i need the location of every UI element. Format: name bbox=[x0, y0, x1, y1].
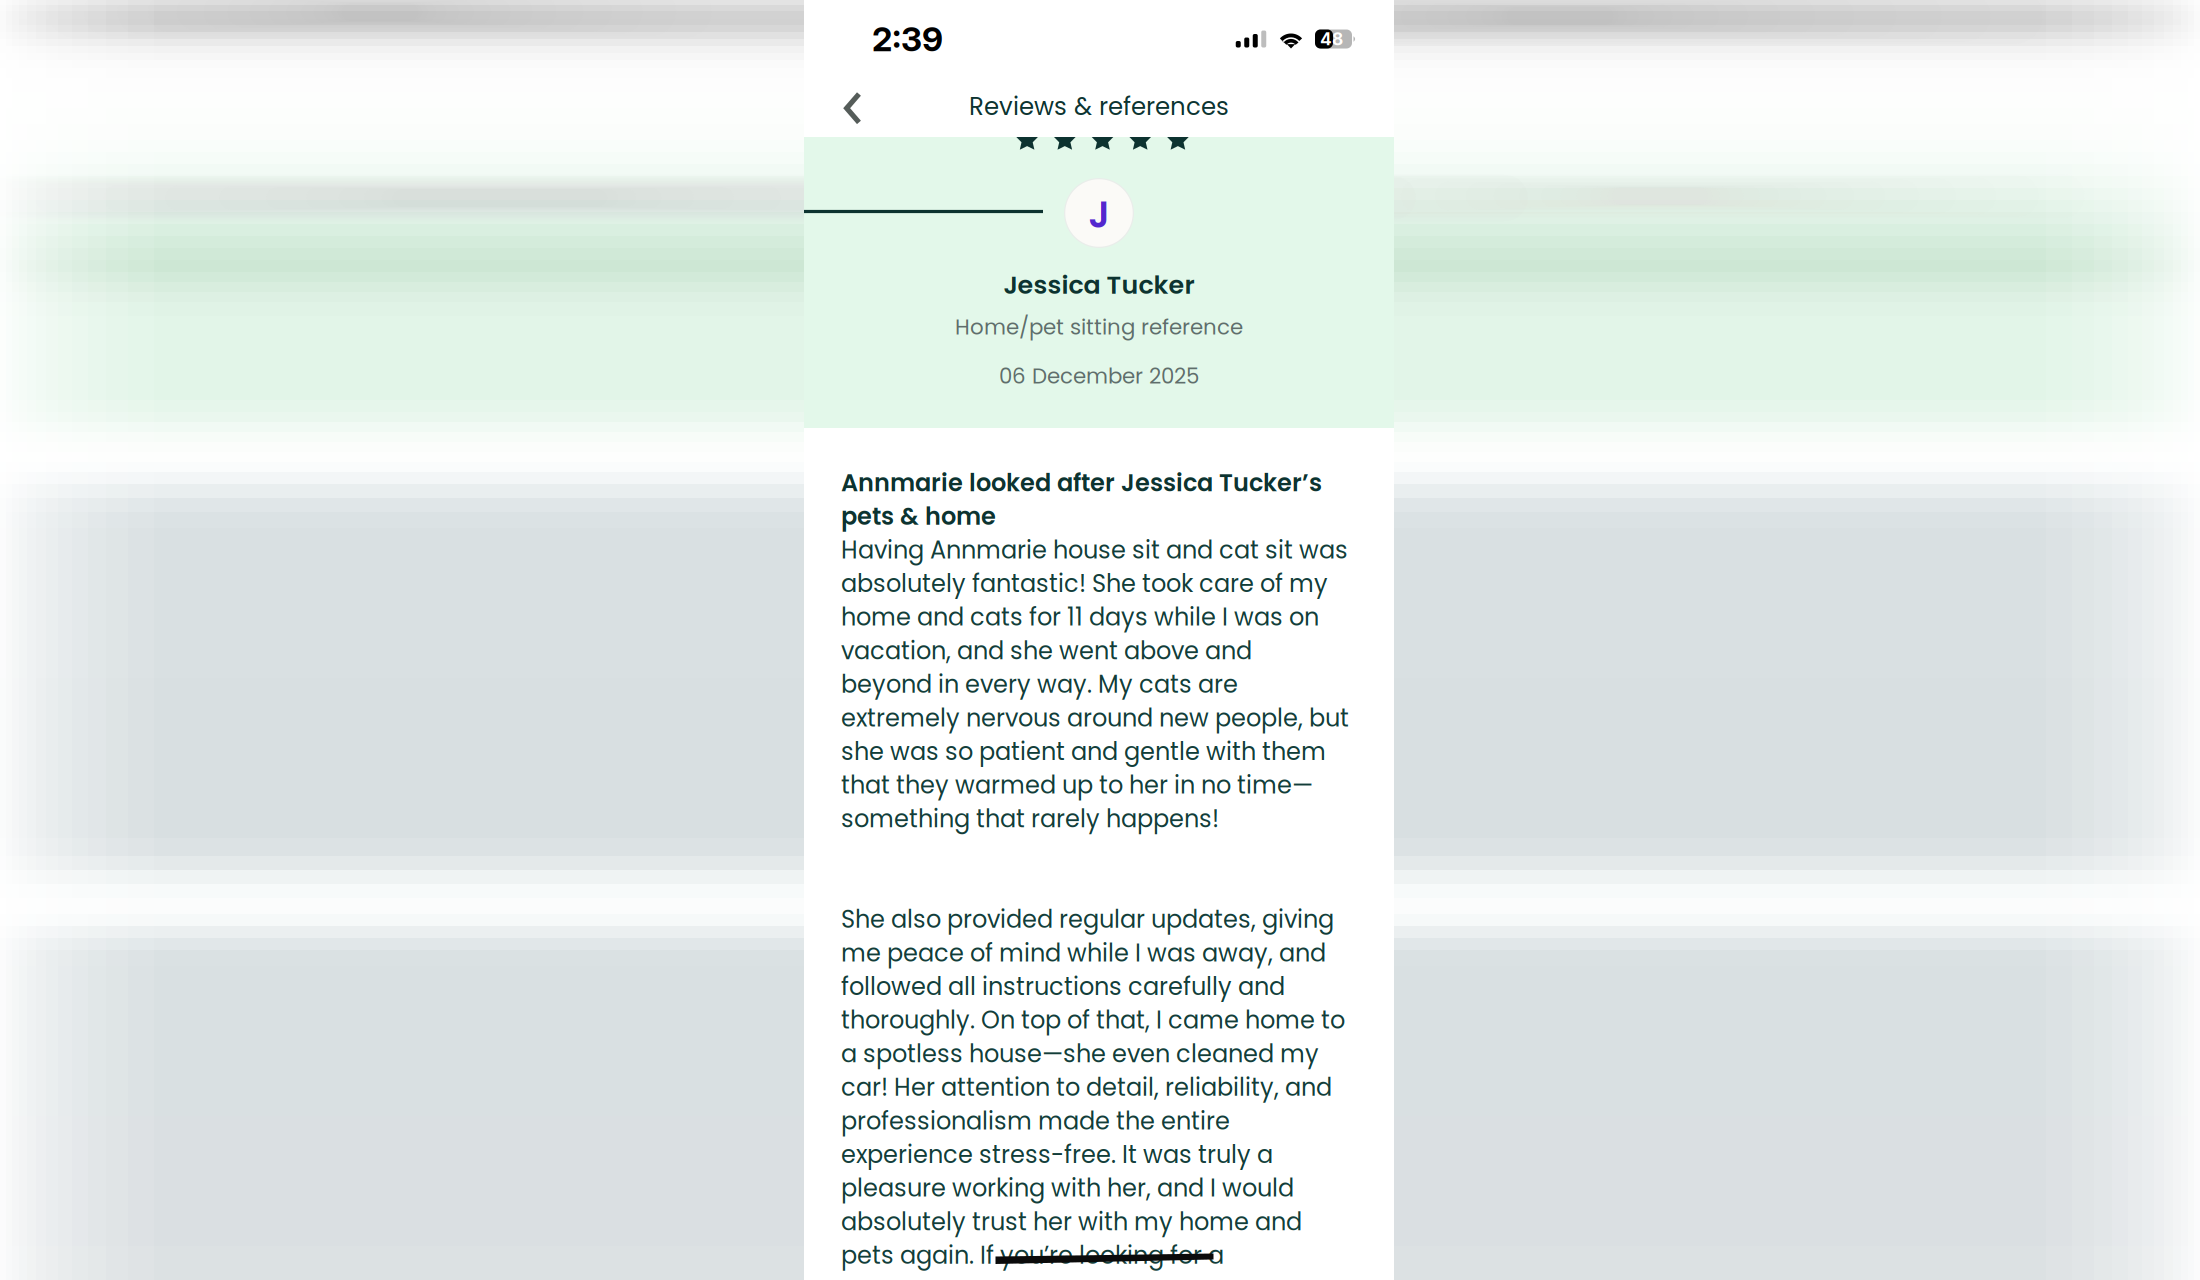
staticText: She also provided regular updates, givin… bbox=[841, 903, 1345, 1272]
staticText: Jessica Tucker bbox=[1003, 267, 1194, 303]
staticText: Annmarie looked after Jessica Tucker’s p… bbox=[841, 466, 1322, 533]
staticText: Reviews & references bbox=[969, 89, 1229, 124]
staticText: J bbox=[1088, 188, 1109, 241]
staticText: Having Annmarie house sit and cat sit wa… bbox=[841, 533, 1349, 836]
staticText: Home/pet sitting reference bbox=[955, 312, 1243, 342]
staticText: 2:39 bbox=[872, 19, 943, 59]
staticText: 48 bbox=[1320, 28, 1343, 49]
button[interactable]: Back bbox=[820, 77, 882, 139]
staticText: 06 December 2025 bbox=[999, 361, 1199, 391]
